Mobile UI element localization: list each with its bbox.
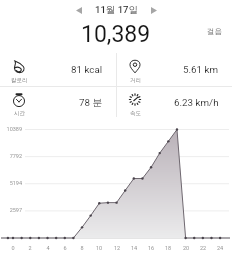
staticText: 걸음 bbox=[207, 27, 222, 36]
button[interactable]: Previous day bbox=[71, 2, 87, 18]
staticText: 10389 bbox=[0, 126, 22, 132]
staticText: 5194 bbox=[0, 180, 22, 186]
staticText: 78 분 bbox=[79, 97, 103, 109]
staticText: 2597 bbox=[0, 207, 22, 213]
staticText: 8 bbox=[75, 245, 89, 251]
staticText: 칼로리 bbox=[11, 77, 28, 84]
staticText: 20 bbox=[179, 245, 193, 251]
staticText: 거리 bbox=[130, 77, 141, 84]
staticText: 속도 bbox=[130, 110, 141, 117]
staticText: 6 bbox=[58, 245, 72, 251]
staticText: 14 bbox=[127, 245, 141, 251]
staticText: 18 bbox=[161, 245, 175, 251]
staticText: 6.23 km/h bbox=[174, 97, 219, 108]
staticText: 11월 17일 bbox=[95, 4, 138, 16]
staticText: 12 bbox=[110, 245, 124, 251]
button[interactable]: 시간 bbox=[0, 87, 116, 118]
staticText: 7792 bbox=[0, 153, 22, 159]
button[interactable]: 거리 bbox=[116, 54, 232, 85]
staticText: 4 bbox=[41, 245, 55, 251]
button[interactable]: Next day bbox=[146, 2, 162, 18]
staticText: 22 bbox=[196, 245, 210, 251]
button[interactable]: 속도 bbox=[116, 87, 232, 118]
staticText: 81 kcal bbox=[71, 64, 103, 75]
staticText: 24 bbox=[213, 245, 227, 251]
staticText: 시간 bbox=[14, 110, 25, 117]
button[interactable]: 칼로리 bbox=[0, 54, 116, 85]
staticText: 16 bbox=[144, 245, 158, 251]
staticText: 10 bbox=[92, 245, 106, 251]
staticText: 0 bbox=[6, 245, 20, 251]
staticText: 10,389 bbox=[81, 21, 151, 48]
staticText: 5.61 km bbox=[183, 64, 219, 75]
staticText: 2 bbox=[23, 245, 37, 251]
